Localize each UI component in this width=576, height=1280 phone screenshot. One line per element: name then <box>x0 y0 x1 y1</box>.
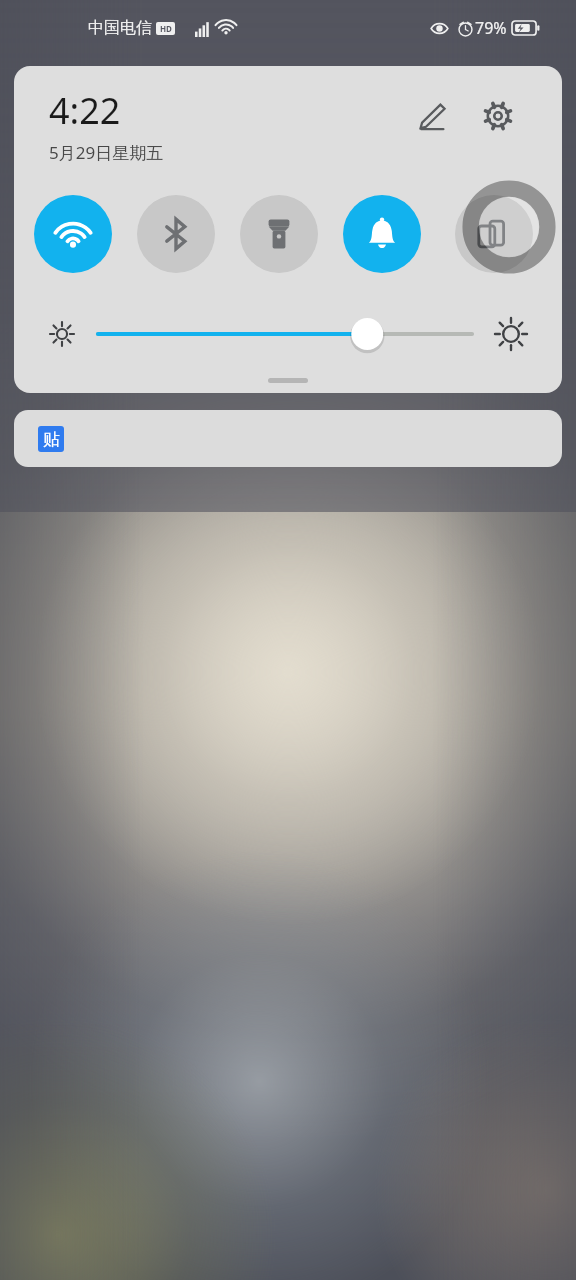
button[interactable]: Flashlight <box>240 195 318 273</box>
staticText: 5月29日星期五 <box>49 141 164 164</box>
button[interactable]: Bluetooth <box>137 195 215 273</box>
button[interactable]: Do not disturb <box>343 195 421 273</box>
staticText: 4:22 <box>49 86 121 135</box>
staticText: 中国电信 <box>88 18 152 38</box>
button[interactable]: Edit quick settings <box>410 94 454 138</box>
staticText: HD <box>160 23 172 34</box>
button[interactable]: Wi-Fi <box>34 195 112 273</box>
button[interactable]: Settings <box>476 94 520 138</box>
button[interactable]: 贴 <box>14 410 562 467</box>
button[interactable] <box>98 314 472 354</box>
button[interactable]: Auto-rotate <box>455 195 533 273</box>
staticText: 贴 <box>43 429 60 450</box>
staticText: 79% <box>475 17 507 39</box>
